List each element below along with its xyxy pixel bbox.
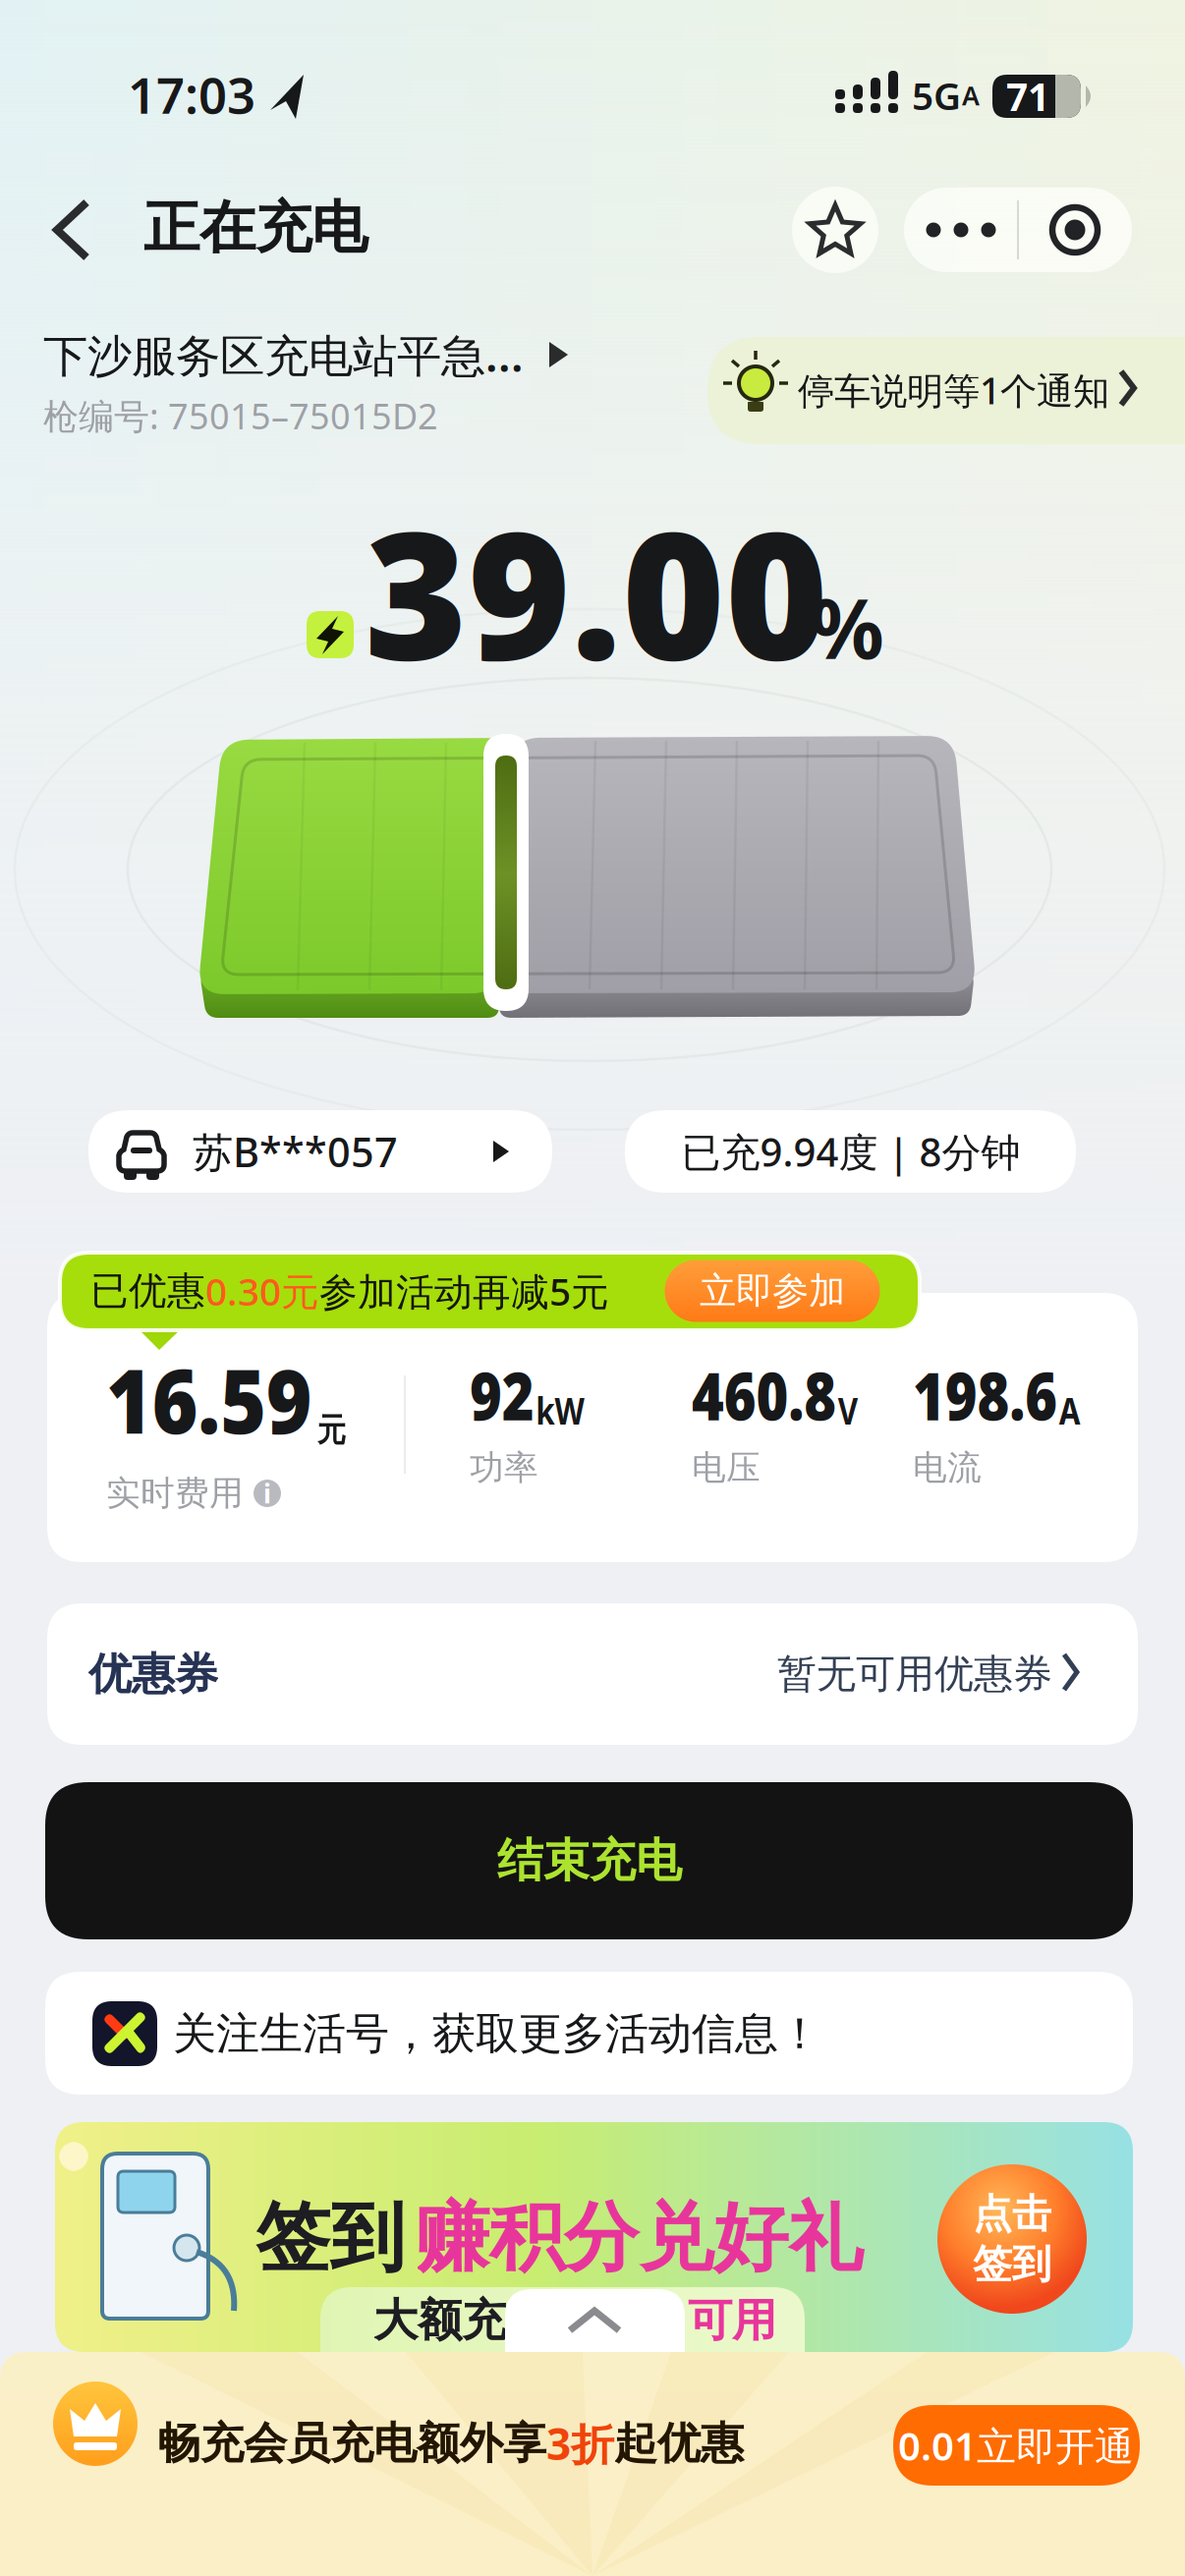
staticText: 5G <box>912 70 961 120</box>
staticText: 功率 <box>470 1447 538 1489</box>
staticText: 16.59 <box>106 1340 340 1458</box>
staticText: 结束充电 <box>497 1833 682 1889</box>
staticText: 参加活动再减5元 <box>319 1266 609 1316</box>
button[interactable]: 下沙服务区充电站平急... <box>0 0 1185 2576</box>
staticText: 460.8 <box>692 1352 864 1439</box>
staticText: 已充9.94度 | 8分钟 <box>681 1125 1020 1177</box>
staticText: 电流 <box>913 1447 982 1489</box>
button[interactable]: 停车说明等1个通知 <box>0 0 1185 2576</box>
staticText: 关注生活号，获取更多活动信息！ <box>173 2007 821 2060</box>
staticText: 已优惠 <box>90 1268 205 1314</box>
staticText: 可用 <box>688 2293 776 2348</box>
staticText: 0.30元 <box>205 1266 319 1316</box>
staticText: 198.6 <box>913 1352 1085 1439</box>
staticText: 电压 <box>692 1447 761 1489</box>
button[interactable]: 结束充电 <box>0 0 1185 2576</box>
staticText: kW <box>548 1386 606 1435</box>
button[interactable]: 苏B***057 <box>0 0 1185 2576</box>
button[interactable]: Favorite <box>792 187 878 273</box>
staticText: 39.00 <box>365 475 828 708</box>
button[interactable]: 签到 <box>0 0 1185 2576</box>
button[interactable]: 关注生活号，获取更多活动信息！ <box>0 0 1185 2576</box>
staticText: 3折 <box>546 2415 614 2472</box>
staticText: 下沙服务区充电站平急... <box>43 325 524 384</box>
staticText: 17:03 <box>128 61 255 127</box>
staticText: 点击 <box>973 2190 1051 2238</box>
staticText: 立即参加 <box>700 1268 845 1314</box>
button[interactable]: Collapse <box>0 0 1185 2576</box>
staticText: 实时费用 <box>106 1472 244 1514</box>
staticText: 赚积分兑好礼 <box>415 2192 863 2284</box>
button[interactable]: Info <box>254 1476 281 1511</box>
staticText: 起优惠 <box>614 2417 744 2470</box>
staticText: % <box>810 572 884 682</box>
staticText: 正在充电 <box>143 193 367 263</box>
staticText: 92 <box>470 1352 546 1439</box>
staticText: 71 <box>1006 71 1049 121</box>
staticText: A <box>962 78 980 113</box>
button[interactable]: 已优惠 <box>0 0 1185 2576</box>
staticText: 签到 <box>255 2192 405 2284</box>
staticText: 签到 <box>973 2240 1051 2288</box>
staticText: 苏B***057 <box>193 1125 398 1178</box>
staticText: 暂无可用优惠券 <box>777 1650 1052 1698</box>
staticText: 畅充会员充电额外享 <box>157 2417 546 2470</box>
staticText: 优惠券 <box>88 1648 218 1701</box>
staticText: 0.01立即开通 <box>898 2419 1134 2471</box>
button[interactable]: More <box>917 188 1005 272</box>
staticText: 停车说明等1个通知 <box>798 366 1109 414</box>
staticText: i <box>263 1476 271 1511</box>
staticText: 枪编号: 75015–75015D2 <box>43 392 438 439</box>
button[interactable]: 优惠券 <box>0 0 1185 2576</box>
button[interactable]: 0.01立即开通 <box>0 0 1185 2576</box>
staticText: 大额充 <box>373 2293 506 2348</box>
button[interactable]: Close <box>1026 188 1124 272</box>
